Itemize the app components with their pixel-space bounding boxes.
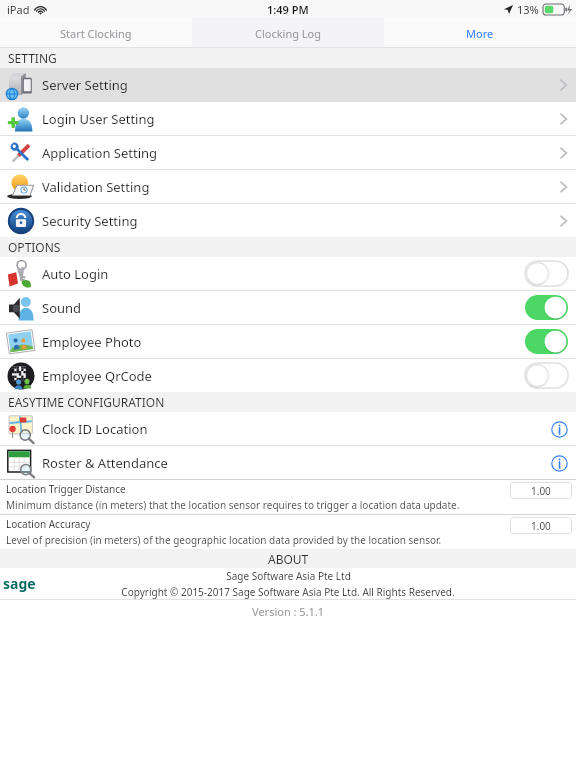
staticText: Employee QrCode [42, 367, 152, 385]
staticText: Sage Software Asia Pte Ltd [226, 569, 351, 583]
button[interactable]: Application Setting [0, 136, 576, 169]
staticText: Validation Setting [42, 178, 150, 196]
button[interactable]: More [384, 18, 576, 48]
button[interactable]: Toggle off [525, 261, 568, 286]
button[interactable]: Clocking Log [192, 18, 384, 48]
staticText: Application Setting [42, 144, 158, 162]
staticText: Clocking Log [255, 26, 322, 41]
staticText: iPad [7, 2, 30, 17]
button[interactable]: Employee QrCode [0, 359, 576, 392]
staticText: Minimum distance (in meters) that the lo… [6, 498, 460, 512]
staticText: 1:49 PM [267, 2, 309, 17]
staticText: 13% [517, 2, 539, 17]
staticText: Version : 5.1.1 [252, 604, 325, 619]
staticText: sage [3, 574, 36, 593]
button[interactable]: Roster & Attendance [0, 446, 576, 479]
button[interactable]: Auto Login [0, 257, 576, 290]
staticText: Location Trigger Distance [6, 482, 126, 496]
button[interactable]: Toggle on [525, 295, 568, 320]
button[interactable]: 1.00 [510, 517, 572, 534]
staticText: Copyright © 2015-2017 Sage Software Asia… [121, 585, 455, 599]
staticText: Login User Setting [42, 110, 155, 128]
button[interactable]: Clock ID Location [0, 412, 576, 445]
staticText: Employee Photo [42, 333, 142, 351]
button[interactable]: Information about Clock ID Location [549, 419, 569, 439]
staticText: Auto Login [42, 265, 109, 283]
button[interactable]: Login User Setting [0, 102, 576, 135]
button[interactable]: Start Clocking [0, 18, 192, 48]
staticText: 1.00 [531, 519, 551, 533]
button[interactable]: Sound [0, 291, 576, 324]
staticText: OPTIONS [8, 239, 61, 255]
button[interactable]: Validation Setting [0, 170, 576, 203]
staticText: SETTING [8, 50, 57, 66]
staticText: EASYTIME CONFIGURATION [8, 394, 165, 410]
button[interactable]: Information about Roster & Attendance [549, 453, 569, 473]
staticText: Level of precision (in meters) of the ge… [6, 533, 442, 547]
staticText: Location Accuracy [6, 517, 91, 531]
staticText: Server Setting [42, 76, 128, 94]
staticText: More [466, 26, 494, 41]
staticText: Clock ID Location [42, 420, 148, 438]
button[interactable]: Employee Photo [0, 325, 576, 358]
staticText: Sound [42, 299, 82, 317]
button[interactable]: Toggle off [525, 363, 568, 388]
button[interactable]: Server Setting [0, 68, 576, 101]
staticText: Roster & Attendance [42, 454, 168, 472]
button[interactable]: 1.00 [510, 482, 572, 499]
staticText: Security Setting [42, 212, 138, 230]
button[interactable]: Location Accuracy [0, 515, 576, 549]
staticText: Start Clocking [60, 26, 132, 41]
button[interactable]: Security Setting [0, 204, 576, 237]
staticText: 1.00 [531, 484, 551, 498]
button[interactable]: Toggle on [525, 329, 568, 354]
button[interactable]: Location Trigger Distance [0, 480, 576, 514]
staticText: ABOUT [268, 551, 309, 567]
